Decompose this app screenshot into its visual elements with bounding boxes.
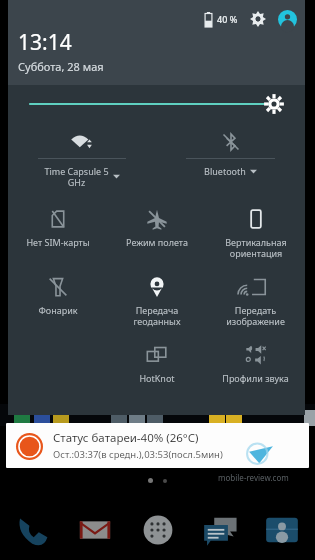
button[interactable]: Передать изображение: [206, 273, 305, 333]
staticText: Передача геоданных: [133, 304, 181, 327]
button[interactable]: Вертикальная ориентация: [206, 205, 305, 265]
button[interactable]: Передача геоданных: [107, 273, 206, 333]
button[interactable]: Gmail: [68, 503, 122, 557]
button[interactable]: Time Capsule 5 GHz: [8, 131, 156, 193]
button[interactable]: Contacts: [255, 503, 309, 557]
button[interactable]: All apps: [131, 503, 185, 557]
button[interactable]: Режим полета: [107, 205, 206, 265]
button[interactable]: User profile: [277, 9, 297, 29]
staticText: Time Capsule 5 GHz: [44, 165, 109, 188]
button[interactable]: Settings: [248, 9, 268, 29]
staticText: Профили звука: [222, 372, 289, 384]
button[interactable]: Messages: [193, 503, 247, 557]
staticText: Суббота, 28 мая: [18, 59, 104, 74]
staticText: Передать изображение: [226, 304, 285, 327]
button[interactable]: Phone: [6, 503, 60, 557]
staticText: Нет SIM-карты: [26, 236, 90, 248]
staticText: mobile-review.com: [218, 472, 289, 483]
button[interactable]: Нет SIM-карты: [8, 205, 107, 265]
button[interactable]: Bluetooth: [156, 131, 305, 193]
button[interactable]: Фонарик: [8, 273, 107, 333]
staticText: Вертикальная ориентация: [225, 236, 287, 259]
button[interactable]: Профили звука: [206, 341, 305, 401]
staticText: 13:14: [18, 28, 72, 57]
button[interactable]: Статус батареи-40% (26°C): [6, 423, 309, 468]
staticText: 40 %: [217, 13, 238, 25]
staticText: Режим полета: [126, 236, 188, 248]
staticText: Фонарик: [38, 304, 78, 316]
button[interactable]: Brightness: [8, 85, 305, 123]
button[interactable]: HotKnot: [107, 341, 206, 401]
staticText: HotKnot: [139, 372, 175, 384]
staticText: Bluetooth: [204, 165, 246, 177]
staticText: Статус батареи-40% (26°C): [53, 430, 199, 446]
staticText: Ост.:03:37(в средн.),03:53(посл.5мин): [53, 448, 223, 461]
